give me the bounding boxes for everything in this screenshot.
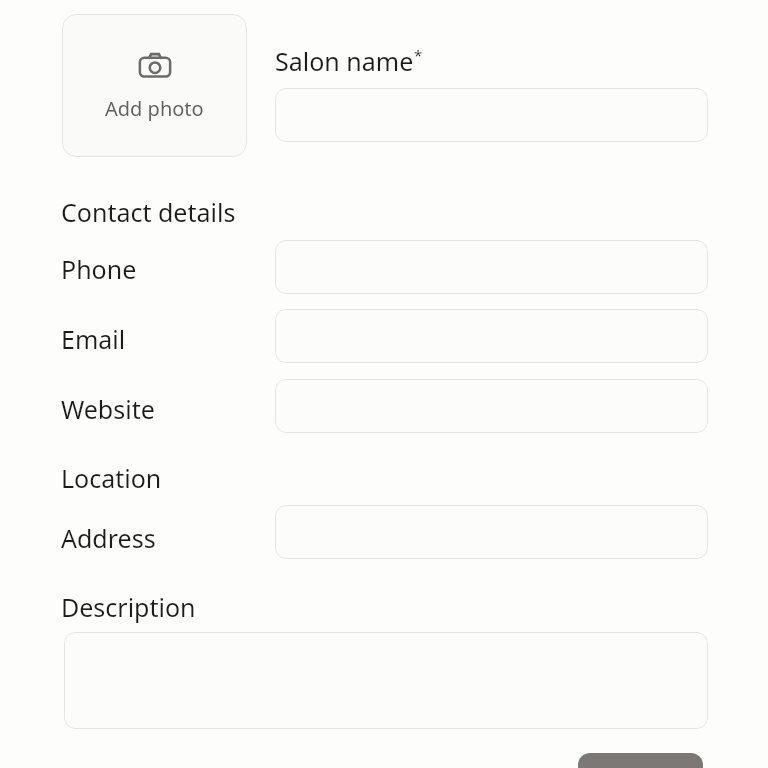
button[interactable]: Phone [275,240,708,294]
button[interactable]: Address [275,505,708,559]
button[interactable]: Website [275,379,708,433]
button[interactable]: Email [275,309,708,363]
staticText: Add photo [105,95,204,122]
staticText: Address [61,521,156,555]
staticText: Website [61,392,155,426]
staticText: Description [61,590,196,624]
button[interactable]: Description [64,632,708,729]
staticText: Contact details [61,195,236,229]
button[interactable]: Save [578,753,703,768]
staticText: * [414,45,423,65]
button[interactable]: Add photo [62,14,247,157]
staticText: Salon name [275,44,414,78]
button[interactable]: Salon name [275,88,708,142]
staticText: Email [61,322,126,356]
staticText: Phone [61,252,137,286]
staticText: Location [61,461,162,495]
